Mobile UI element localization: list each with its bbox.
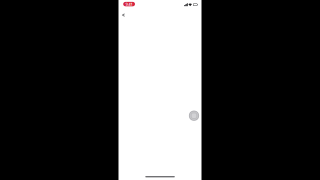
staticText: 9:41: [126, 1, 133, 7]
button[interactable]: Assistive Touch: [189, 111, 199, 121]
button[interactable]: Back: [119, 11, 128, 20]
